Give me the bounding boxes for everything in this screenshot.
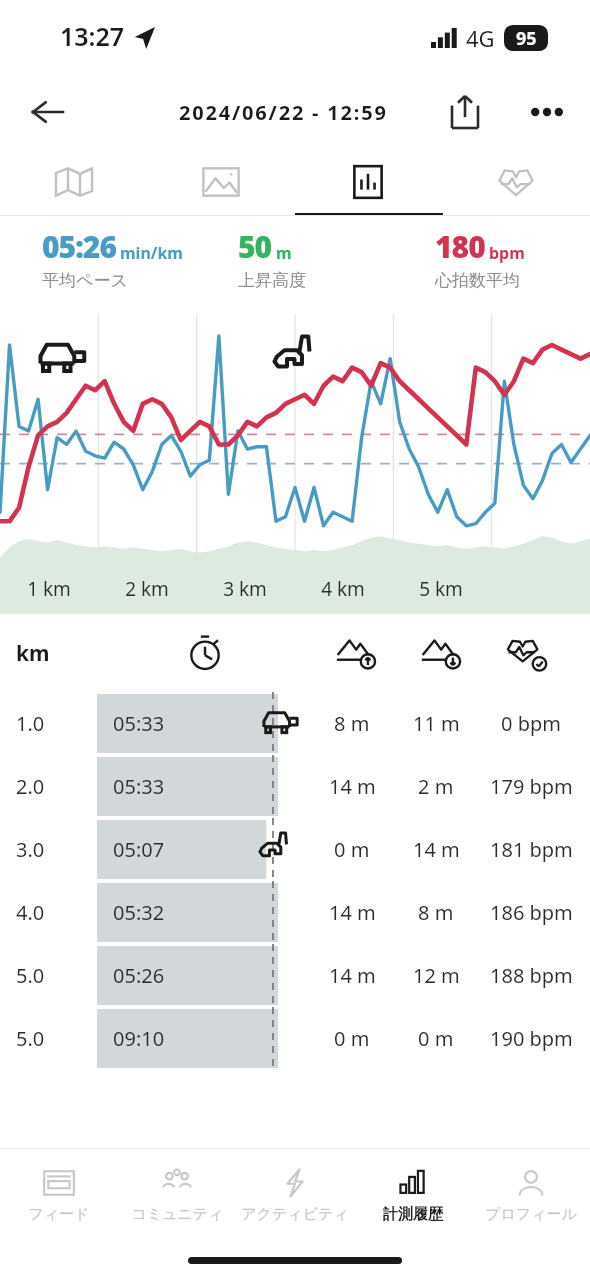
button[interactable]: Share xyxy=(440,87,490,137)
staticText: 8 m xyxy=(334,710,370,737)
staticText: フィード xyxy=(28,1205,90,1224)
button[interactable]: Tab xyxy=(0,148,147,216)
staticText: 4G xyxy=(466,23,495,53)
button[interactable]: 1.0 xyxy=(0,692,590,755)
staticText: bpm xyxy=(489,242,525,264)
staticText: 05:26 xyxy=(42,226,116,267)
staticText: 05:26 xyxy=(113,962,165,989)
staticText: 179 bpm xyxy=(490,773,573,800)
other: Elevation gain xyxy=(336,632,378,674)
staticText: 0 m xyxy=(334,836,370,863)
staticText: 13:27 xyxy=(60,19,125,53)
staticText: 14 m xyxy=(413,836,460,863)
button[interactable]: フィード xyxy=(0,1148,118,1240)
staticText: アクティビティ xyxy=(241,1205,349,1224)
staticText: 0 bpm xyxy=(501,710,561,737)
button[interactable]: Tab xyxy=(442,148,590,216)
staticText: 5.0 xyxy=(16,962,45,989)
staticText: 50 xyxy=(238,226,272,267)
staticText: 3 km xyxy=(223,576,267,602)
staticText: 2 km xyxy=(125,576,169,602)
other: Elevation loss xyxy=(421,632,463,674)
button[interactable]: アクティビティ xyxy=(236,1148,354,1240)
other: Tab xyxy=(494,160,538,204)
button[interactable]: 4.0 xyxy=(0,881,590,944)
staticText: 14 m xyxy=(329,962,376,989)
staticText: 190 bpm xyxy=(490,1025,573,1052)
staticText: 2 m xyxy=(418,773,454,800)
staticText: 186 bpm xyxy=(490,899,573,926)
staticText: 05:33 xyxy=(113,773,165,800)
staticText: 95 xyxy=(516,26,537,51)
staticText: 0 m xyxy=(334,1025,370,1052)
staticText: 4.0 xyxy=(16,899,45,926)
staticText: 1.0 xyxy=(16,710,45,737)
staticText: 0 m xyxy=(418,1025,454,1052)
other: Tab xyxy=(199,160,243,204)
button[interactable]: 計測履歴 xyxy=(354,1148,472,1240)
staticText: 05:32 xyxy=(113,899,165,926)
button[interactable]: 3.0 xyxy=(0,818,590,881)
button[interactable]: Tab xyxy=(147,148,294,216)
staticText: 14 m xyxy=(329,899,376,926)
button[interactable]: 5.0 xyxy=(0,944,590,1007)
staticText: 05:33 xyxy=(113,710,165,737)
staticText: 3.0 xyxy=(16,836,45,863)
staticText: m xyxy=(276,242,292,264)
staticText: 心拍数平均 xyxy=(435,270,520,291)
staticText: 2.0 xyxy=(16,773,45,800)
staticText: min/km xyxy=(120,242,183,264)
other: Tab xyxy=(52,160,96,204)
staticText: 05:07 xyxy=(113,836,165,863)
button[interactable]: プロフィール xyxy=(472,1148,590,1240)
staticText: 計測履歴 xyxy=(383,1205,443,1224)
button[interactable]: More options xyxy=(522,87,572,137)
button[interactable]: コミュニティ xyxy=(118,1148,236,1240)
staticText: 8 m xyxy=(418,899,454,926)
staticText: 181 bpm xyxy=(490,836,573,863)
staticText: 平均ペース xyxy=(42,270,128,291)
button[interactable]: 2.0 xyxy=(0,755,590,818)
staticText: 14 m xyxy=(329,773,376,800)
button[interactable]: 5.0 xyxy=(0,1007,590,1070)
staticText: コミュニティ xyxy=(131,1205,224,1224)
staticText: 12 m xyxy=(413,962,460,989)
other: Pace xyxy=(186,634,224,672)
staticText: 180 xyxy=(435,226,485,267)
other: Tab xyxy=(346,160,390,204)
staticText: 11 m xyxy=(413,710,460,737)
staticText: 09:10 xyxy=(113,1025,165,1052)
staticText: 2024/06/22 - 12:59 xyxy=(179,99,388,126)
staticText: プロフィール xyxy=(485,1205,577,1224)
staticText: 1 km xyxy=(27,576,71,602)
button[interactable]: Back xyxy=(22,86,74,138)
staticText: 上昇高度 xyxy=(238,270,306,291)
staticText: km xyxy=(16,639,50,668)
staticText: 5 km xyxy=(419,576,463,602)
button[interactable]: Tab xyxy=(294,148,442,216)
staticText: 5.0 xyxy=(16,1025,45,1052)
other: Average heart rate xyxy=(505,632,547,674)
staticText: 4 km xyxy=(321,576,365,602)
staticText: 188 bpm xyxy=(490,962,573,989)
